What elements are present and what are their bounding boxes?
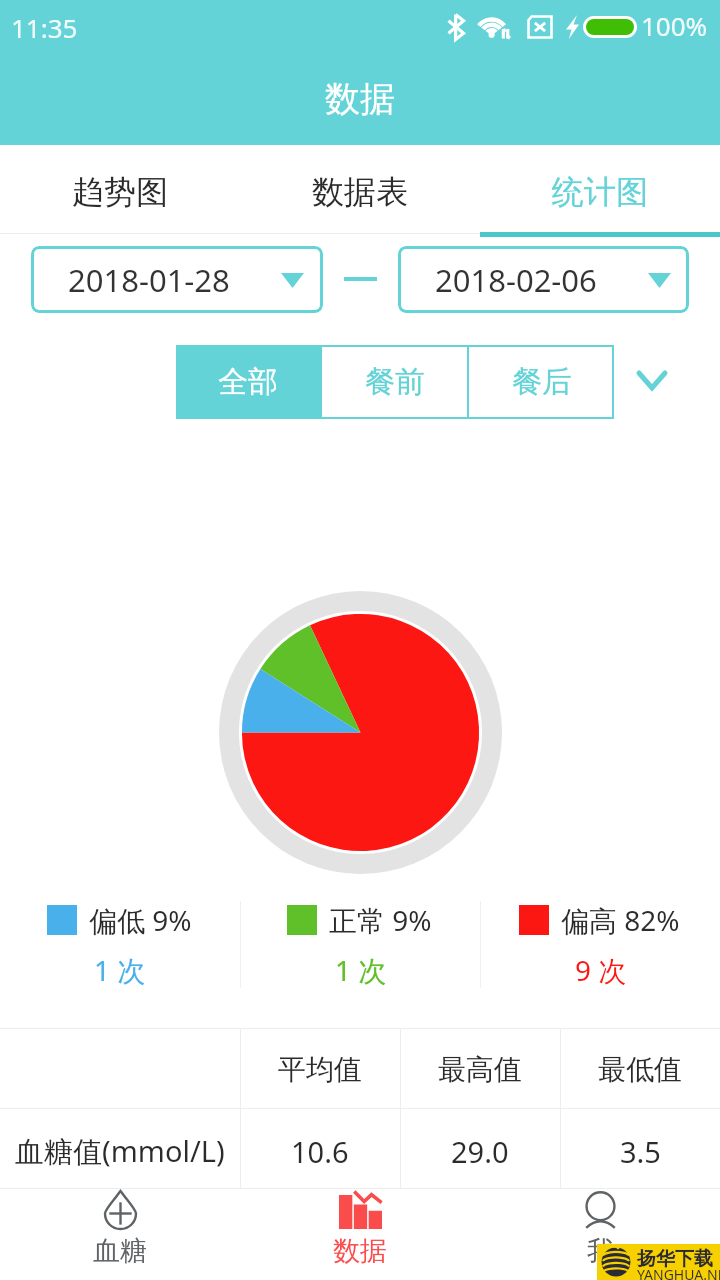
button[interactable]: 餐前 bbox=[322, 345, 467, 419]
staticText: 餐前 bbox=[365, 363, 425, 401]
staticText: 最高值 bbox=[438, 1052, 522, 1087]
staticText: 29.0 bbox=[451, 1132, 509, 1171]
staticText: 9 次 bbox=[575, 951, 627, 988]
staticText: 偏低 9% bbox=[89, 901, 192, 939]
staticText: 扬华下载 bbox=[637, 1247, 713, 1271]
staticText: 1 次 bbox=[335, 951, 387, 988]
button[interactable]: 数据 bbox=[240, 1189, 480, 1280]
staticText: 10.6 bbox=[291, 1132, 349, 1171]
button[interactable]: 2018-02-06 bbox=[398, 246, 689, 313]
staticText: 100% bbox=[641, 8, 708, 43]
button[interactable]: 我 bbox=[480, 1189, 720, 1280]
staticText: 正常 9% bbox=[329, 901, 432, 939]
staticText: 最低值 bbox=[598, 1052, 682, 1087]
staticText: 1 次 bbox=[94, 951, 146, 988]
staticText: 数据表 bbox=[312, 172, 408, 212]
staticText: 11:35 bbox=[11, 10, 78, 45]
staticText: 2018-02-06 bbox=[435, 259, 597, 301]
button[interactable]: 趋势图 bbox=[0, 145, 240, 234]
button[interactable]: 血糖 bbox=[0, 1189, 240, 1280]
staticText: 趋势图 bbox=[72, 172, 168, 212]
button[interactable]: 统计图 bbox=[480, 145, 720, 234]
staticText: 数据 bbox=[325, 77, 395, 121]
staticText: 统计图 bbox=[552, 172, 648, 212]
staticText: 血糖值(mmol/L) bbox=[15, 1131, 225, 1171]
staticText: 偏高 82% bbox=[561, 901, 680, 939]
staticText: 数据 bbox=[333, 1234, 387, 1268]
button[interactable]: 餐后 bbox=[469, 345, 614, 419]
staticText: 平均值 bbox=[278, 1052, 362, 1087]
staticText: YANGHUA.NET bbox=[637, 1265, 720, 1280]
button[interactable]: 2018-01-28 bbox=[31, 246, 323, 313]
staticText: 我 bbox=[587, 1234, 614, 1268]
staticText: 3.5 bbox=[620, 1132, 661, 1171]
staticText: 全部 bbox=[218, 363, 278, 401]
staticText: 餐后 bbox=[512, 363, 572, 401]
staticText: 2018-01-28 bbox=[68, 259, 230, 301]
button[interactable]: 展开 bbox=[627, 355, 677, 405]
button[interactable]: 数据表 bbox=[240, 145, 480, 234]
staticText: 血糖 bbox=[93, 1234, 147, 1268]
button[interactable]: 全部 bbox=[176, 345, 320, 419]
